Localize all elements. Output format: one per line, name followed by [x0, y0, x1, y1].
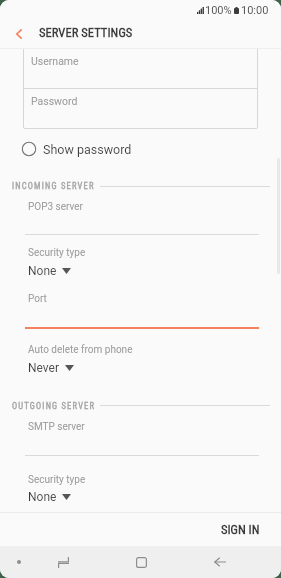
button[interactable]: Back — [202, 546, 238, 578]
staticText: SERVER SETTINGS — [39, 25, 133, 40]
staticText: INCOMING SERVER — [12, 181, 95, 191]
staticText: Password — [31, 95, 78, 107]
staticText: SIGN IN — [221, 522, 260, 537]
button[interactable]: None — [28, 264, 71, 278]
button[interactable]: Home — [123, 546, 159, 578]
button[interactable]: Show password — [18, 137, 142, 161]
button[interactable]: None — [28, 490, 71, 504]
staticText: 100% — [205, 4, 232, 16]
staticText: Show password — [43, 142, 132, 157]
staticText: Security type — [28, 247, 86, 259]
staticText: Port — [28, 293, 47, 305]
staticText: Security type — [28, 474, 86, 486]
staticText: None — [28, 490, 57, 504]
staticText: None — [28, 264, 57, 278]
button[interactable]: Recent apps — [45, 546, 81, 578]
staticText: POP3 server — [28, 201, 84, 213]
staticText: SMTP server — [28, 421, 85, 433]
button[interactable]: Show keyboard — [5, 548, 33, 576]
button[interactable]: SIGN IN — [211, 513, 270, 546]
button[interactable]: Back — [7, 22, 31, 46]
button[interactable]: Never — [28, 361, 74, 375]
staticText: Auto delete from phone — [28, 344, 133, 356]
staticText: OUTGOING SERVER — [12, 401, 96, 411]
staticText: 10:00 — [241, 4, 269, 16]
staticText: Never — [28, 361, 60, 375]
staticText: Username — [31, 55, 79, 67]
